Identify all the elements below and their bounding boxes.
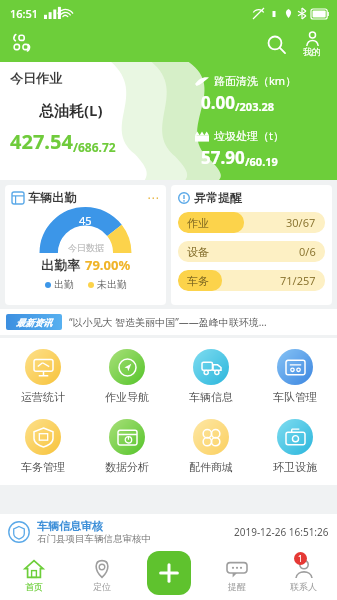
- staticText: /203.28: [235, 99, 275, 114]
- staticText: 0.00: [201, 91, 235, 114]
- staticText: 联系人: [290, 581, 317, 592]
- staticText: 未出勤: [97, 278, 127, 291]
- button[interactable]: Search: [259, 27, 293, 61]
- staticText: 车辆出勤: [28, 190, 76, 205]
- button[interactable]: 车务管理: [0, 415, 85, 478]
- button[interactable]: 异常提醒: [171, 185, 332, 305]
- staticText: 总油耗(L): [39, 100, 103, 120]
- staticText: 配件商城: [189, 460, 233, 474]
- staticText: 垃圾处理（t）: [214, 128, 284, 143]
- staticText: 427.54: [10, 128, 73, 155]
- staticText: 设备: [187, 245, 209, 259]
- staticText: 我的: [303, 46, 321, 57]
- button[interactable]: 数据分析: [85, 415, 169, 478]
- staticText: 提醒: [228, 581, 246, 592]
- staticText: 1: [298, 553, 303, 564]
- staticText: 数据分析: [105, 460, 149, 474]
- staticText: 最新资讯: [16, 317, 52, 328]
- button[interactable]: 联系人: [270, 550, 337, 600]
- staticText: 作业: [187, 216, 209, 230]
- staticText: /60.19: [245, 154, 278, 169]
- button[interactable]: 运营统计: [0, 345, 85, 408]
- button[interactable]: Add: [147, 551, 191, 595]
- button[interactable]: 环卫设施: [253, 415, 337, 478]
- staticText: 定位: [93, 581, 111, 592]
- button[interactable]: 作业: [178, 212, 325, 233]
- staticText: 石门县项目车辆信息审核中: [37, 533, 151, 545]
- staticText: 运营统计: [21, 390, 65, 404]
- staticText: 车务管理: [21, 460, 65, 474]
- staticText: 今日数据: [68, 242, 104, 253]
- button[interactable]: 车队管理: [253, 345, 337, 408]
- staticText: 车辆信息审核: [37, 519, 103, 533]
- staticText: 异常提醒: [194, 190, 242, 205]
- button[interactable]: 配件商城: [169, 415, 253, 478]
- staticText: 30/67: [286, 215, 316, 230]
- button[interactable]: Scan: [8, 29, 38, 59]
- button[interactable]: 车辆信息: [169, 345, 253, 408]
- staticText: 45: [79, 213, 92, 228]
- staticText: 0/6: [299, 244, 316, 259]
- staticText: 作业导航: [105, 390, 149, 404]
- staticText: 车辆信息: [189, 390, 233, 404]
- staticText: “以小见大 智造美丽中国”——盈峰中联环境…: [69, 315, 267, 329]
- staticText: 2019-12-26 16:51:26: [234, 525, 329, 539]
- button[interactable]: 提醒: [203, 550, 270, 600]
- staticText: 57.90: [201, 146, 245, 169]
- staticText: 环卫设施: [273, 460, 317, 474]
- button[interactable]: 设备: [178, 241, 325, 262]
- staticText: 79.00%: [85, 256, 131, 274]
- staticText: 首页: [25, 581, 43, 592]
- button[interactable]: 作业导航: [85, 345, 169, 408]
- staticText: 出勤: [54, 278, 74, 291]
- staticText: 71/257: [280, 273, 316, 288]
- button[interactable]: 车务: [178, 270, 325, 291]
- button[interactable]: 定位: [68, 550, 136, 600]
- button[interactable]: 车辆出勤: [5, 185, 166, 305]
- staticText: 出勤率: [41, 257, 80, 273]
- staticText: 车务: [187, 274, 209, 288]
- staticText: 今日作业: [10, 70, 62, 86]
- button[interactable]: 我的: [293, 31, 331, 57]
- staticText: 车队管理: [273, 390, 317, 404]
- button[interactable]: 首页: [0, 550, 68, 600]
- staticText: 路面清洗（km）: [214, 73, 297, 88]
- staticText: ⋯: [147, 191, 159, 205]
- staticText: /686.72: [73, 139, 116, 155]
- staticText: 16:51: [10, 6, 39, 21]
- button[interactable]: 车辆信息审核: [0, 514, 337, 550]
- button[interactable]: 最新资讯: [0, 309, 337, 335]
